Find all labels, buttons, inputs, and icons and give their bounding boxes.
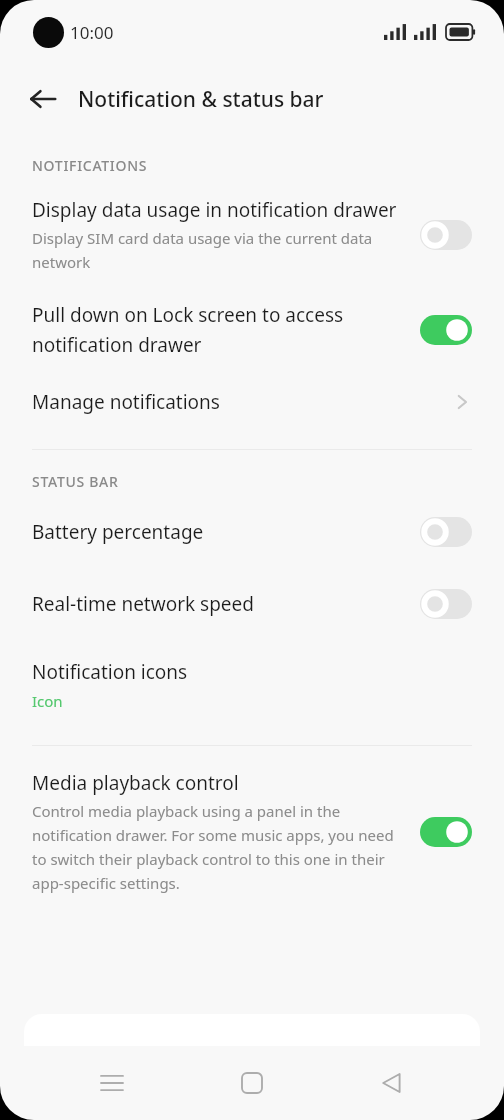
button[interactable]: Switch off: [420, 589, 472, 619]
staticText: Notification icons: [32, 659, 188, 685]
staticText: Media playback control: [32, 770, 239, 796]
button[interactable]: Pull down on Lock screen to access notif…: [0, 302, 504, 357]
button[interactable]: Switch off: [420, 517, 472, 547]
button[interactable]: Real-time network speed: [0, 589, 504, 619]
button[interactable]: Battery percentage: [0, 517, 504, 547]
staticText: Manage notifications: [32, 389, 452, 415]
button[interactable]: Manage notifications: [0, 389, 504, 415]
staticText: Real-time network speed: [32, 591, 254, 617]
staticText: NOTIFICATIONS: [32, 156, 148, 175]
button[interactable]: Recent apps: [84, 1055, 140, 1111]
button[interactable]: Back: [18, 74, 68, 124]
button[interactable]: Back: [364, 1055, 420, 1111]
button[interactable]: Display data usage in notification drawe…: [0, 197, 504, 272]
staticText: Pull down on Lock screen to access notif…: [32, 302, 402, 357]
button[interactable]: Switch on: [420, 315, 472, 345]
button[interactable]: Home: [224, 1055, 280, 1111]
button[interactable]: Switch off: [420, 220, 472, 250]
button[interactable]: Media playback control: [0, 770, 504, 893]
staticText: 10:00: [70, 21, 114, 44]
staticText: STATUS BAR: [32, 472, 119, 491]
staticText: Control media playback using a panel in …: [32, 801, 402, 893]
staticText: Icon: [32, 691, 63, 711]
staticText: Battery percentage: [32, 519, 204, 545]
button[interactable]: Notification icons: [0, 659, 504, 711]
staticText: Notification & status bar: [78, 85, 324, 114]
staticText: Display SIM card data usage via the curr…: [32, 228, 402, 272]
button[interactable]: Switch on: [420, 817, 472, 847]
staticText: Display data usage in notification drawe…: [32, 197, 397, 223]
